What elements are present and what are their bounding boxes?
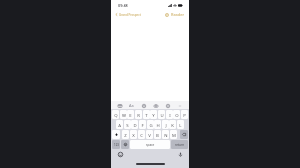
button[interactable]: return <box>171 140 188 149</box>
button[interactable]: A <box>116 120 123 129</box>
staticText: C <box>140 132 143 138</box>
staticText: X <box>132 132 135 138</box>
button[interactable]: Backspace <box>180 130 188 139</box>
button[interactable]: S <box>124 120 131 129</box>
button[interactable]: K <box>169 120 176 129</box>
button[interactable]: N <box>162 130 169 139</box>
staticText: Grand Prospect <box>119 13 141 17</box>
staticText: H <box>156 122 160 128</box>
button[interactable]: Shift <box>112 130 120 139</box>
staticText: Q <box>114 112 118 118</box>
button[interactable]: D <box>131 120 138 129</box>
staticText: O <box>175 112 179 118</box>
button[interactable]: W <box>120 110 127 119</box>
staticText: U <box>160 112 164 118</box>
staticText: 09:48 <box>118 3 128 8</box>
button[interactable]: I <box>166 110 173 119</box>
staticText: L <box>179 122 182 128</box>
staticText: R <box>137 112 140 118</box>
button[interactable]: Grand Prospect <box>115 12 141 17</box>
button[interactable]: J <box>162 120 169 129</box>
staticText: Reader <box>171 12 184 17</box>
staticText: Aa <box>129 103 134 108</box>
button[interactable]: Z <box>122 130 129 139</box>
button[interactable]: Y <box>150 110 157 119</box>
staticText: Y <box>152 112 155 118</box>
staticText: S <box>126 122 129 128</box>
button[interactable]: L <box>177 120 184 129</box>
staticText: I <box>169 112 171 118</box>
button[interactable]: Emoji <box>117 151 123 157</box>
staticText: N <box>164 132 168 138</box>
staticText: space <box>146 143 155 147</box>
button[interactable]: Emoji <box>121 140 129 149</box>
button[interactable]: R <box>135 110 142 119</box>
button[interactable]: H <box>154 120 161 129</box>
button[interactable]: Dictate <box>177 151 183 157</box>
button[interactable]: B <box>154 130 161 139</box>
button[interactable]: X <box>130 130 137 139</box>
button[interactable]: E <box>127 110 134 119</box>
staticText: V <box>148 132 151 138</box>
staticText: T <box>145 112 148 118</box>
button[interactable]: T <box>143 110 150 119</box>
button[interactable]: Camera <box>153 103 158 108</box>
button[interactable]: space <box>130 140 170 149</box>
button[interactable]: Shapes <box>141 103 146 108</box>
button[interactable]: U <box>158 110 165 119</box>
button[interactable]: G <box>147 120 154 129</box>
staticText: G <box>149 122 153 128</box>
button[interactable]: M <box>170 130 177 139</box>
staticText: return <box>175 143 185 147</box>
staticText: W <box>122 112 126 118</box>
staticText: 123 <box>114 143 119 147</box>
staticText: F <box>141 122 144 128</box>
staticText: D <box>133 122 137 128</box>
button[interactable]: F <box>139 120 146 129</box>
staticText: B <box>156 132 159 138</box>
button[interactable]: Text style <box>129 103 134 108</box>
staticText: A <box>118 122 121 128</box>
button[interactable]: Reader <box>165 12 184 17</box>
button[interactable]: Close <box>177 103 182 108</box>
button[interactable]: Table <box>117 103 122 108</box>
button[interactable]: 123 <box>112 140 120 149</box>
button[interactable]: P <box>181 110 188 119</box>
button[interactable]: C <box>138 130 145 139</box>
button[interactable]: V <box>146 130 153 139</box>
staticText: K <box>171 122 174 128</box>
staticText: Z <box>124 132 127 138</box>
staticText: J <box>165 122 167 128</box>
button[interactable]: O <box>173 110 180 119</box>
staticText: M <box>172 132 176 138</box>
staticText: P <box>183 112 186 118</box>
button[interactable]: Attach <box>165 103 170 108</box>
button[interactable]: Q <box>112 110 119 119</box>
staticText: E <box>129 112 132 118</box>
